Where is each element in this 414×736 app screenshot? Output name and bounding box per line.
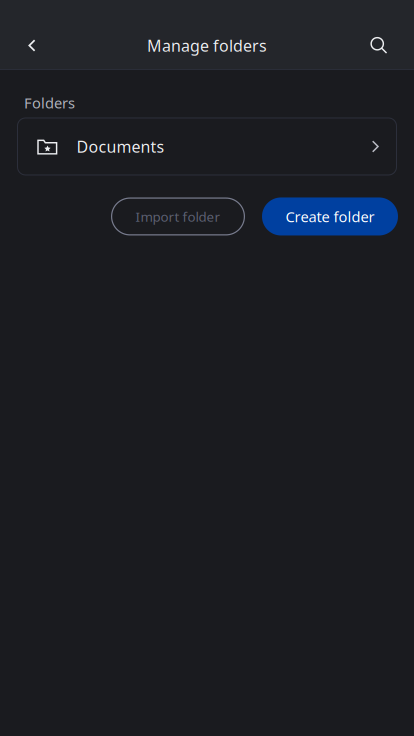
staticText: Documents bbox=[77, 136, 165, 157]
button[interactable]: Documents bbox=[17, 117, 397, 175]
staticText: Create folder bbox=[285, 207, 374, 226]
button[interactable]: Search bbox=[357, 22, 401, 69]
staticText: Import folder bbox=[135, 208, 220, 225]
button[interactable]: Import folder bbox=[111, 197, 245, 235]
button[interactable]: Create folder bbox=[262, 197, 398, 235]
staticText: Manage folders bbox=[147, 35, 267, 56]
staticText: Folders bbox=[24, 93, 75, 112]
button[interactable]: Back bbox=[10, 22, 54, 69]
